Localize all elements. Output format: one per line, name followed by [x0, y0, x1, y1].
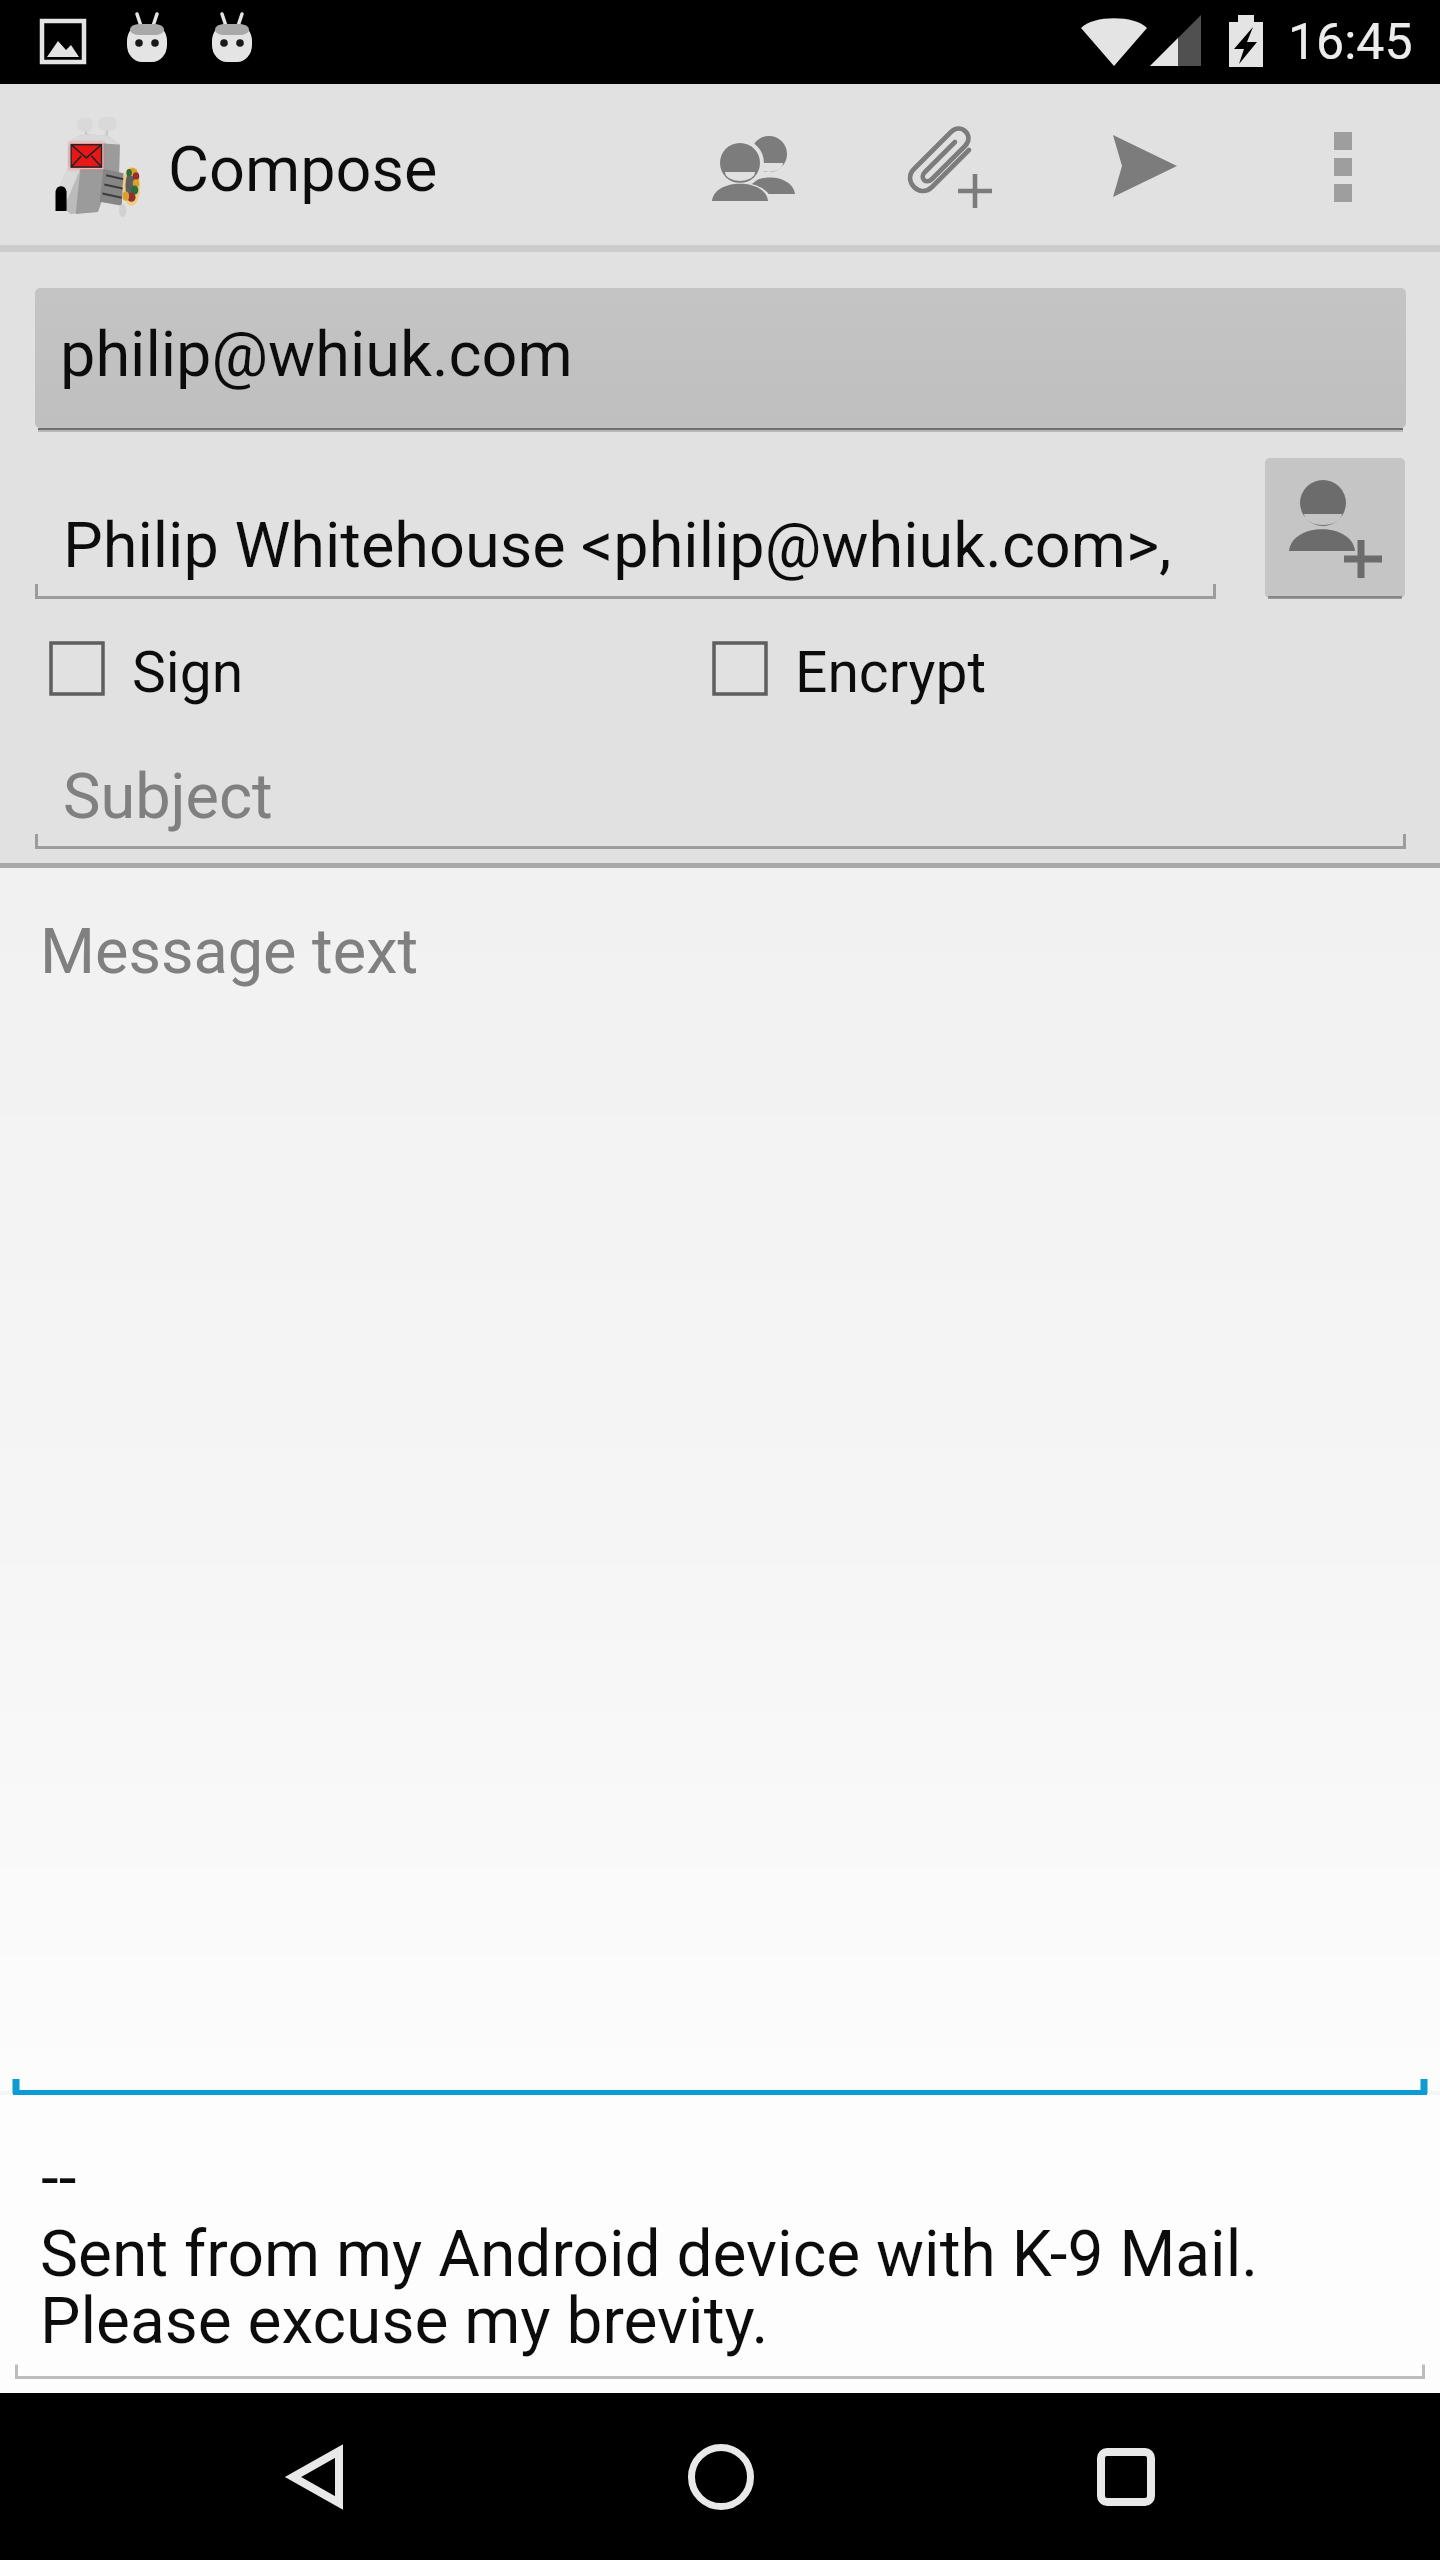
button[interactable]: Encrypt: [712, 631, 1272, 705]
button[interactable]: Recents: [1046, 2393, 1206, 2560]
button[interactable]: Add recipient: [1265, 458, 1405, 598]
button[interactable]: Home: [641, 2393, 801, 2560]
staticText: Subject: [63, 760, 273, 834]
button[interactable]: Contacts: [674, 84, 834, 245]
button[interactable]: Message text: [0, 868, 1440, 2091]
staticText: --: [41, 2141, 77, 2216]
staticText: philip@whiuk.com: [60, 318, 573, 392]
staticText: Message text: [40, 915, 418, 989]
button[interactable]: Sign: [49, 631, 649, 705]
staticText: Compose: [168, 133, 438, 207]
button[interactable]: Subject: [35, 709, 1406, 849]
staticText: Sign: [132, 639, 244, 706]
button[interactable]: Back: [236, 2393, 396, 2560]
staticText: Sent from my Android device with K-9 Mai…: [40, 2217, 1259, 2359]
staticText: Philip Whitehouse <philip@whiuk.com>,: [63, 509, 1223, 583]
button[interactable]: Add attachment: [860, 84, 1030, 245]
button[interactable]: Send: [1065, 88, 1225, 245]
button[interactable]: More options: [1283, 88, 1403, 245]
button[interactable]: [35, 288, 1406, 428]
button[interactable]: Philip Whitehouse <philip@whiuk.com>,: [35, 458, 1216, 599]
button[interactable]: K-9 Mail: [30, 104, 170, 233]
staticText: 16:45: [1288, 13, 1413, 72]
staticText: Encrypt: [795, 639, 987, 706]
